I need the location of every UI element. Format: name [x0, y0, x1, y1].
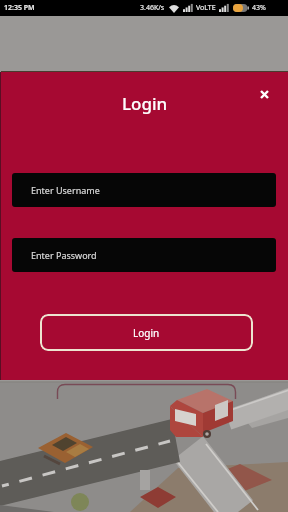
staticText: Login — [133, 326, 160, 340]
staticText: VoLTE — [196, 3, 216, 13]
staticText: Login — [122, 92, 168, 115]
button[interactable]: Login — [40, 314, 253, 351]
button[interactable]: Enter Password — [12, 238, 276, 272]
staticText: Enter Username — [31, 184, 100, 196]
staticText: 12:35 PM — [4, 3, 35, 13]
staticText: Enter Password — [31, 249, 97, 261]
button[interactable] — [254, 84, 275, 104]
staticText: 3.46K/s — [140, 3, 165, 13]
staticText: 43% — [252, 3, 266, 13]
button[interactable]: Enter Username — [12, 173, 276, 207]
